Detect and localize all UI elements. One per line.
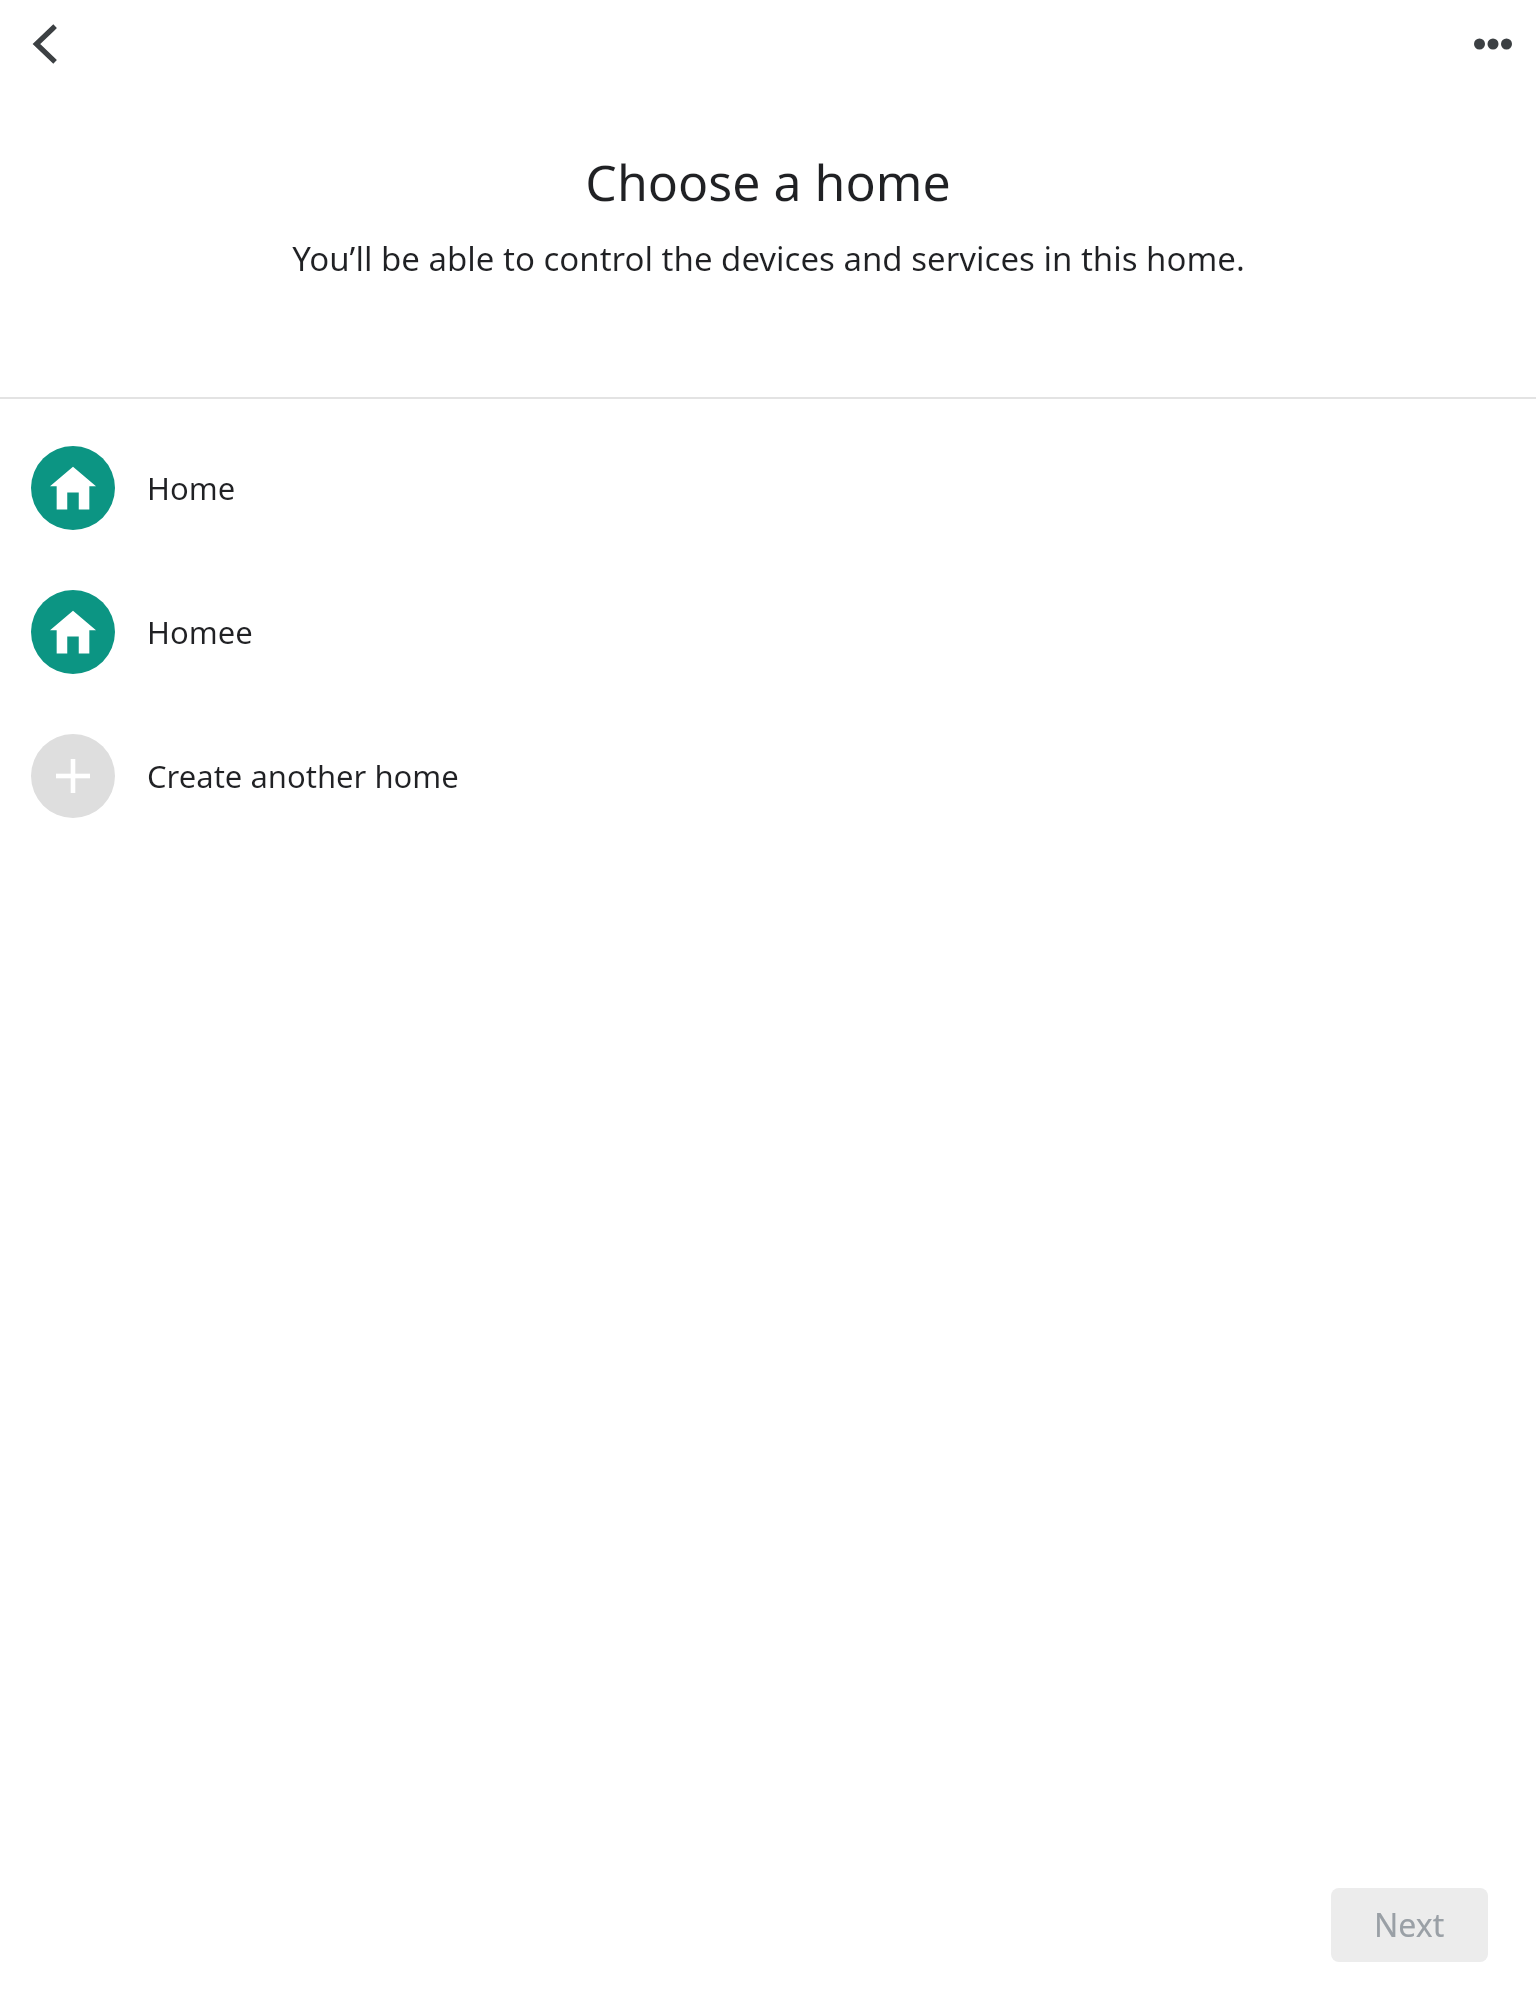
button[interactable]: Homee (0, 590, 1536, 674)
staticText: You’ll be able to control the devices an… (292, 236, 1245, 281)
button[interactable]: Create another home (0, 734, 1536, 818)
button[interactable]: Next (1331, 1888, 1488, 1962)
staticText: Create another home (147, 755, 459, 797)
staticText: Homee (147, 611, 253, 653)
staticText: Choose a home (585, 148, 951, 216)
staticText: Next (1374, 1903, 1445, 1947)
button[interactable]: Home (0, 446, 1536, 530)
staticText: Home (147, 467, 236, 509)
button[interactable]: More options (1455, 6, 1531, 82)
button[interactable]: Back (8, 6, 84, 82)
